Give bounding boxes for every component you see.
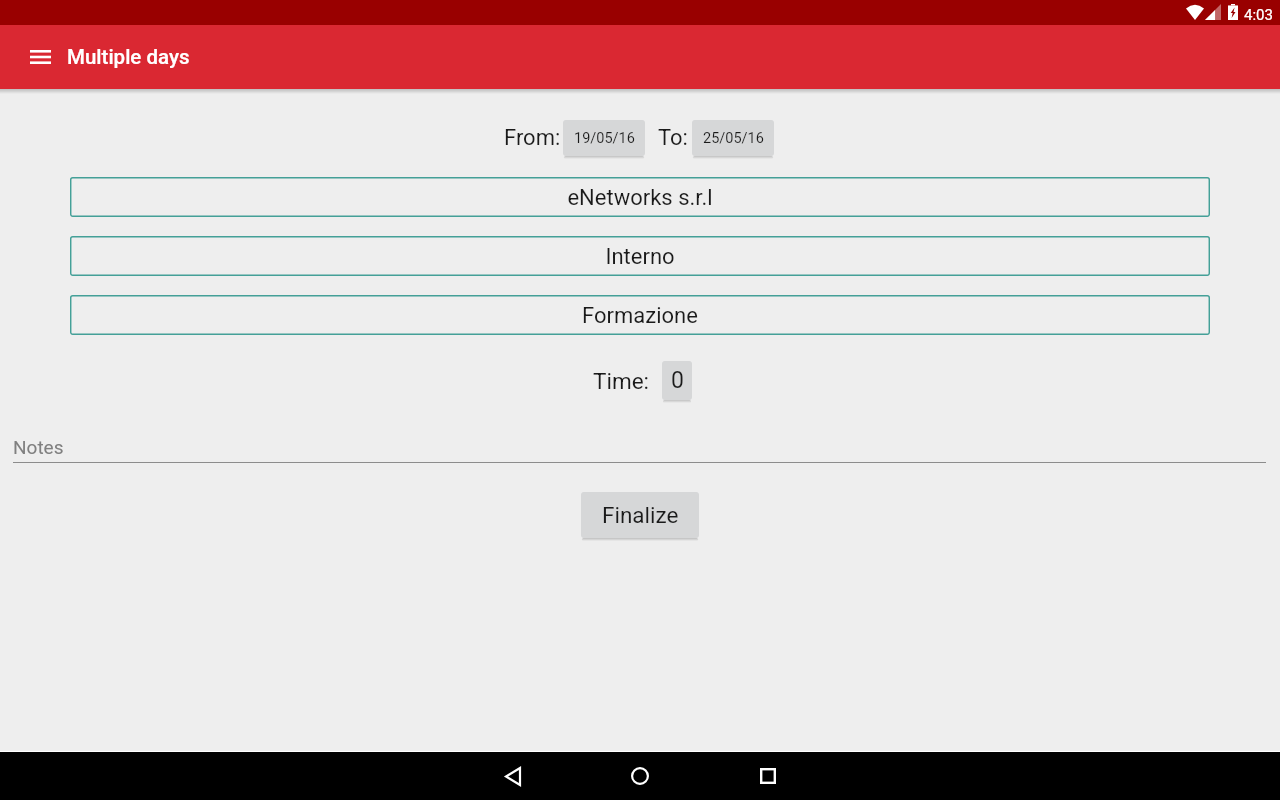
staticText: Formazione <box>582 303 698 329</box>
staticText: From: <box>504 125 561 151</box>
button[interactable]: Formazione <box>70 295 1210 335</box>
button[interactable]: Notes <box>12 432 1266 463</box>
button[interactable]: Interno <box>70 236 1210 276</box>
button[interactable]: eNetworks s.r.l <box>70 177 1210 217</box>
button[interactable]: Back <box>489 752 537 800</box>
button[interactable]: 25/05/16 <box>692 120 774 156</box>
staticText: Time: <box>593 368 650 394</box>
staticText: 4:03 <box>1244 6 1273 24</box>
button[interactable]: Recent apps <box>744 752 792 800</box>
staticText: Interno <box>605 244 675 270</box>
button[interactable]: Finalize <box>581 492 699 538</box>
staticText: To: <box>658 125 688 151</box>
staticText: 25/05/16 <box>703 130 764 147</box>
staticText: Finalize <box>602 502 679 528</box>
button[interactable]: 0 <box>662 361 692 400</box>
button[interactable]: Home <box>616 752 664 800</box>
staticText: eNetworks s.r.l <box>567 185 713 211</box>
button[interactable]: 19/05/16 <box>563 120 645 156</box>
staticText: 0 <box>671 367 684 394</box>
staticText: Multiple days <box>67 45 190 69</box>
staticText: 19/05/16 <box>574 130 635 147</box>
button[interactable]: Open navigation menu <box>16 33 64 81</box>
staticText: Notes <box>13 436 64 458</box>
